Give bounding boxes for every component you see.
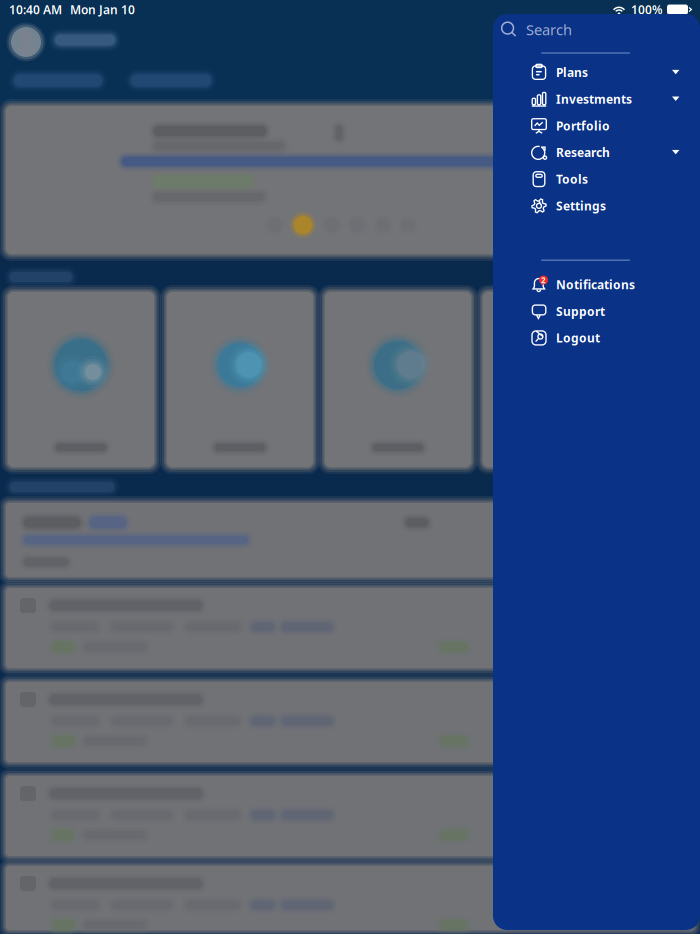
- staticText: Search: [526, 20, 572, 39]
- button[interactable]: Support: [493, 298, 700, 325]
- button[interactable]: Settings: [493, 192, 700, 219]
- button[interactable]: Research: [493, 139, 700, 166]
- staticText: Investments: [556, 91, 632, 107]
- staticText: Mon Jan 10: [70, 1, 135, 17]
- button[interactable]: 2: [493, 271, 700, 298]
- staticText: 2: [541, 275, 546, 285]
- staticText: 100%: [631, 1, 663, 17]
- staticText: 10:40 AM: [9, 1, 62, 17]
- button[interactable]: Logout: [493, 325, 700, 351]
- button[interactable]: Investments: [493, 86, 700, 112]
- staticText: Logout: [556, 330, 600, 346]
- staticText: Tools: [556, 171, 588, 187]
- button[interactable]: Tools: [493, 166, 700, 192]
- staticText: Support: [556, 303, 605, 319]
- staticText: Notifications: [556, 277, 635, 292]
- staticText: Research: [556, 144, 610, 160]
- staticText: Settings: [556, 198, 606, 214]
- staticText: Plans: [556, 64, 588, 80]
- staticText: Portfolio: [556, 118, 610, 134]
- button[interactable]: Plans: [493, 59, 700, 86]
- button[interactable]: Portfolio: [493, 112, 700, 139]
- button[interactable]: Search: [493, 14, 700, 45]
